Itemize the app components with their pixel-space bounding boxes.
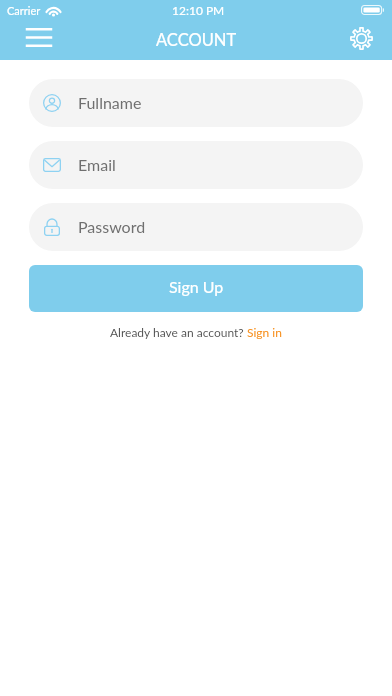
staticText: Sign Up	[169, 277, 224, 296]
button[interactable]: Open navigation menu	[21, 19, 57, 55]
staticText: 12:10 PM	[172, 3, 225, 17]
button[interactable]: Settings	[343, 22, 379, 58]
staticText: ACCOUNT	[156, 30, 237, 50]
button[interactable]: Fullname	[29, 79, 363, 127]
button[interactable]: Email	[29, 141, 363, 189]
button[interactable]: Password	[29, 203, 363, 251]
staticText: Email	[78, 155, 116, 174]
staticText: Fullname	[78, 93, 142, 112]
button[interactable]: Sign Up	[29, 265, 363, 312]
button[interactable]: Sign in	[244, 325, 282, 339]
staticText: Carrier	[7, 4, 41, 17]
staticText: Password	[78, 217, 146, 236]
staticText: Already have an account?	[110, 325, 244, 339]
